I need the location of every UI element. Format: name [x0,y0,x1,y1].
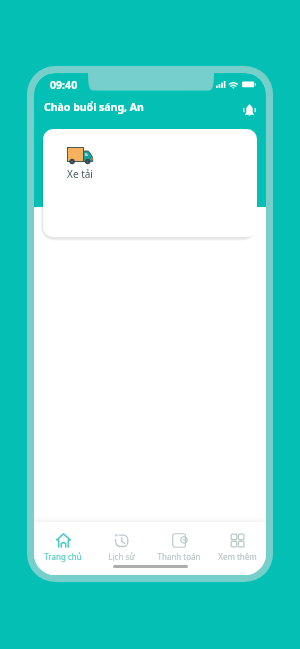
button[interactable]: Notifications [237,98,261,122]
button[interactable]: Xe tải [58,147,102,181]
button[interactable]: Lịch sử [92,522,150,575]
staticText: Thanh toán [157,551,201,562]
button[interactable]: Xem thêm [208,522,266,575]
staticText: Lịch sử [108,551,135,562]
button[interactable]: Thanh toán [150,522,208,575]
staticText: Xe tải [67,167,93,181]
staticText: 09:40 [50,78,78,92]
staticText: Trang chủ [44,551,82,562]
staticText: Chào buổi sáng, An [44,100,144,114]
staticText: Xem thêm [218,551,257,562]
button[interactable]: Trang chủ [34,522,92,575]
